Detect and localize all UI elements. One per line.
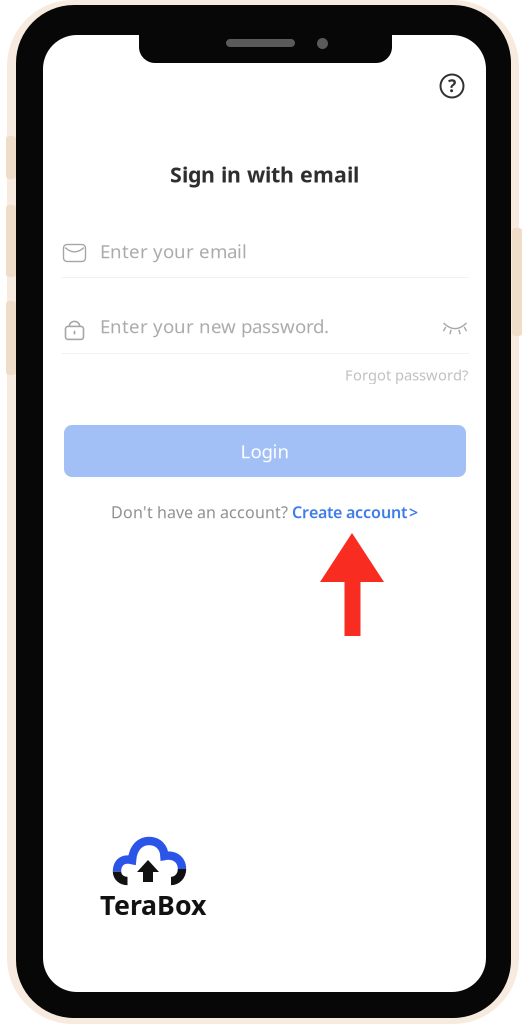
staticText: Login — [240, 439, 289, 463]
staticText: Don't have an account? — [111, 501, 292, 523]
staticText: Forgot password? — [345, 365, 468, 384]
staticText: ? — [448, 74, 456, 97]
button[interactable]: Create account — [292, 501, 418, 523]
button[interactable]: Help — [438, 72, 466, 100]
button[interactable]: Forgot password? — [345, 365, 468, 384]
button[interactable]: Login — [64, 425, 466, 477]
staticText: Enter your new password. — [100, 314, 329, 338]
button[interactable]: Show password — [442, 317, 468, 341]
staticText: Enter your email — [100, 239, 247, 263]
staticText: Sign in with email — [170, 160, 359, 188]
staticText: TeraBox — [100, 887, 206, 922]
staticText: > — [409, 501, 418, 523]
staticText: Create account — [292, 501, 407, 523]
